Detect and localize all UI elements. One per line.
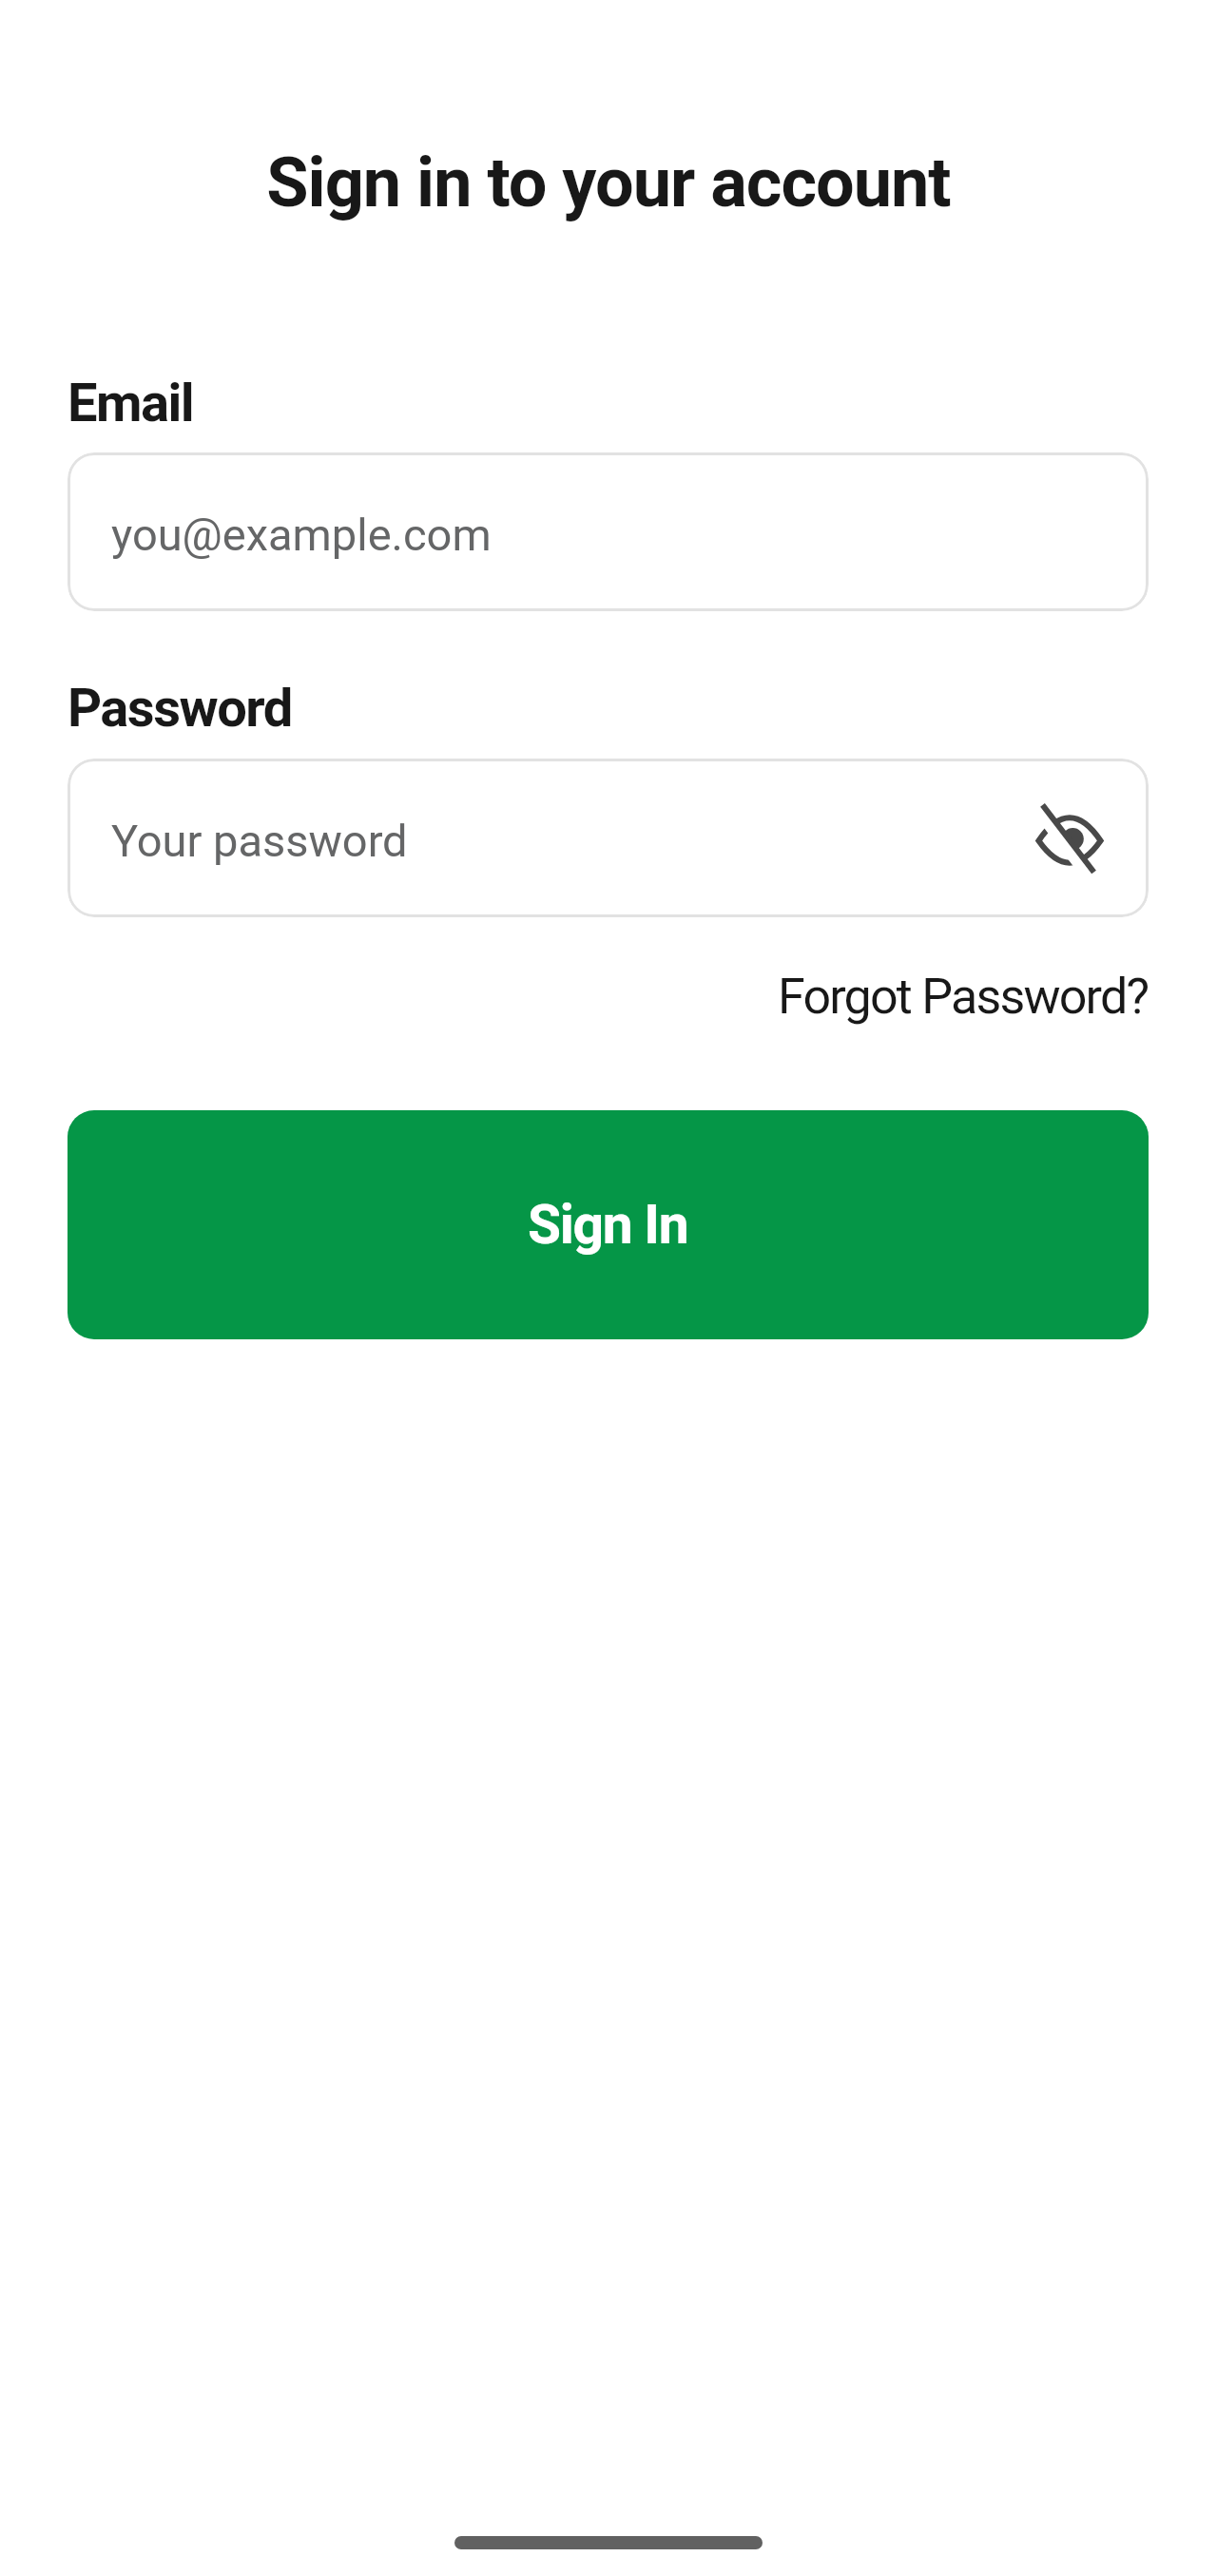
button[interactable]: Your password bbox=[68, 759, 1149, 917]
staticText: Email bbox=[68, 372, 194, 434]
staticText: Password bbox=[68, 677, 292, 740]
staticText: Your password bbox=[111, 815, 408, 867]
button[interactable] bbox=[1034, 803, 1105, 874]
staticText: Sign in to your account bbox=[0, 143, 1217, 222]
button[interactable]: Sign In bbox=[68, 1110, 1149, 1339]
staticText: Sign In bbox=[528, 1193, 688, 1257]
button[interactable]: Forgot Password? bbox=[778, 968, 1149, 1026]
button[interactable]: you@example.com bbox=[68, 452, 1149, 611]
staticText: you@example.com bbox=[111, 509, 492, 561]
